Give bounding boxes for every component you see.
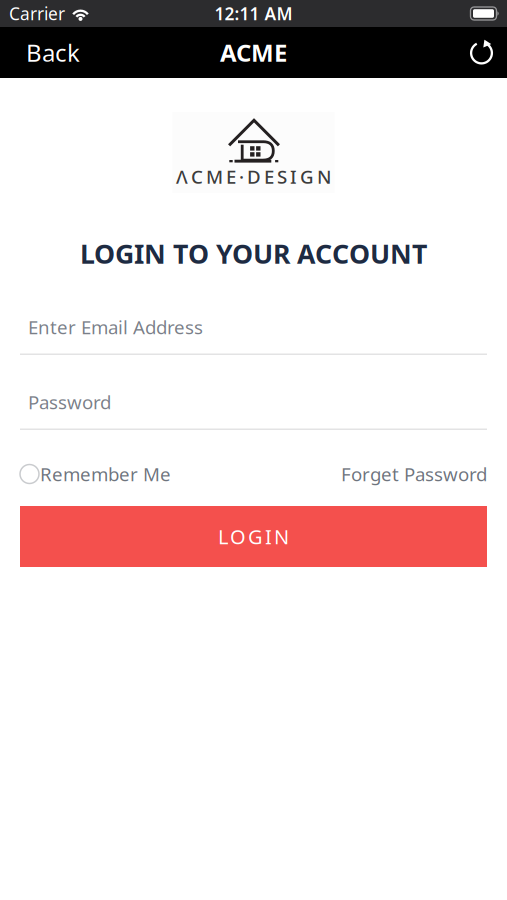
staticText: ACME: [220, 37, 287, 68]
staticText: 12:11 AM: [214, 2, 292, 25]
staticText: L O G I N: [218, 523, 289, 550]
button[interactable]: L O G I N: [20, 506, 487, 567]
staticText: Λ C M E · D E S I G N: [176, 164, 331, 189]
staticText: Forget Password: [341, 462, 487, 486]
staticText: Back: [26, 37, 80, 68]
button[interactable]: Forget Password: [341, 462, 487, 486]
staticText: Remember Me: [40, 462, 171, 486]
button[interactable]: [469, 38, 507, 66]
button[interactable]: Enter Email Address: [20, 314, 487, 355]
staticText: Password: [28, 390, 111, 414]
staticText: LOGIN TO YOUR ACCOUNT: [80, 236, 427, 271]
button[interactable]: Back: [0, 37, 80, 68]
staticText: Enter Email Address: [28, 315, 203, 339]
staticText: Carrier: [9, 2, 65, 25]
button[interactable]: Password: [20, 389, 487, 430]
button[interactable]: Remember Me: [20, 462, 171, 486]
